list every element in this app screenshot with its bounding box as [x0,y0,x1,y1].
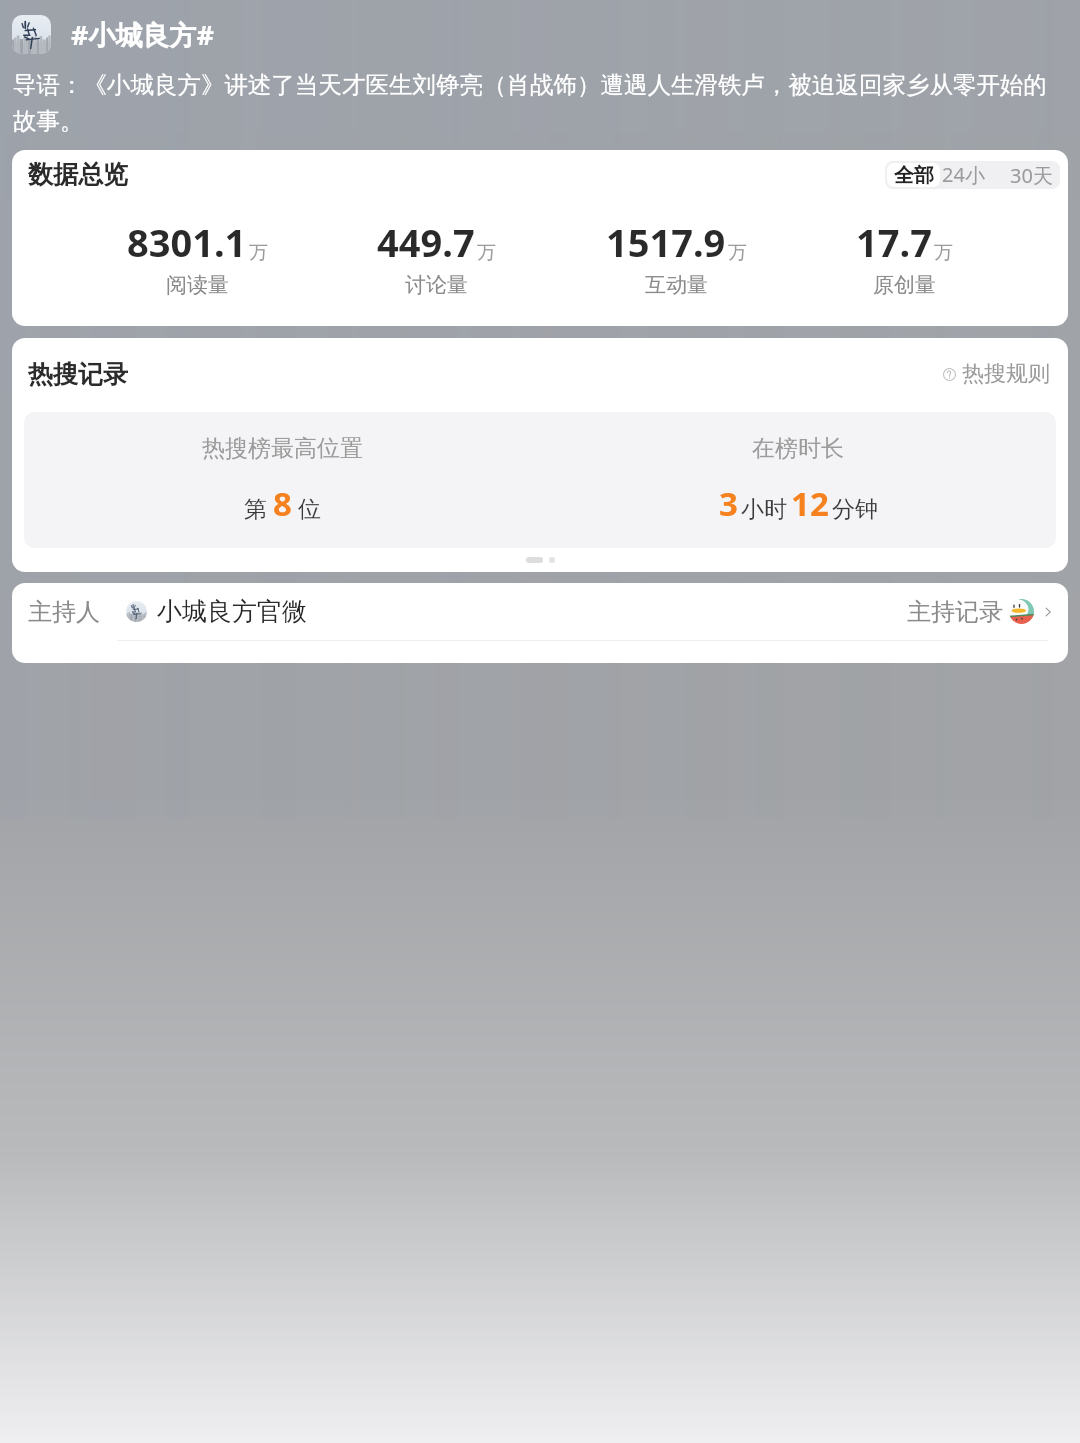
staticText: #小城良方# [71,16,214,53]
button[interactable]: 主持人 [12,583,1068,640]
button[interactable]: 全部 [887,163,940,187]
staticText: 万 [477,241,496,265]
staticText: 热搜规则 [962,360,1050,388]
staticText: 全部 [894,163,934,187]
staticText: 8 [273,481,292,526]
staticText: 阅读量 [166,272,229,298]
staticText: 3 [719,481,738,526]
staticText: 原创量 [873,272,936,298]
staticText: 17.7 [856,216,932,268]
staticText: 分钟 [832,495,878,524]
button[interactable]: 24小时 [942,161,1002,189]
other: 热搜规则说明 [943,368,956,381]
staticText: 主持人 [28,597,100,627]
staticText: 449.7 [377,216,475,268]
staticText: 小城良方官微 [157,596,307,627]
staticText: 热搜记录 [28,359,128,390]
staticText: 万 [249,241,268,265]
staticText: 小时 [741,495,787,524]
staticText: 30天 [1010,162,1053,189]
staticText: 讨论量 [405,272,468,298]
staticText: 万 [728,241,747,265]
staticText: 万 [934,241,953,265]
staticText: 第 [244,495,267,524]
staticText: 主持记录 [907,597,1003,627]
staticText: 位 [298,495,321,524]
staticText: 12 [791,481,829,526]
staticText: 数据总览 [28,159,128,190]
other: 查看主持记录 [1040,604,1056,620]
staticText: 热搜榜最高位置 [202,434,363,463]
button[interactable] [12,15,51,54]
staticText: 1517.9 [606,216,726,268]
button[interactable]: 30天 [1002,161,1060,189]
staticText: 互动量 [645,272,708,298]
staticText: 24小时 [942,161,1002,189]
button[interactable]: 热搜规则说明 [939,356,1054,392]
staticText: 在榜时长 [752,434,844,463]
staticText: 8301.1 [127,216,247,268]
staticText: 导语：《小城良方》讲述了当天才医生刘铮亮（肖战饰）遭遇人生滑铁卢，被迫返回家乡从… [13,70,1067,136]
